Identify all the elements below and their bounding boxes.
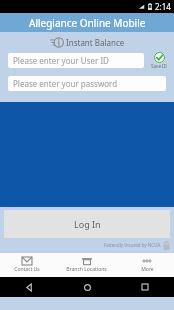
staticText: More	[141, 266, 154, 273]
button[interactable]: Please enter your User ID	[8, 53, 144, 68]
button[interactable]: Contact Us	[0, 253, 53, 277]
staticText: Branch Locations	[66, 266, 107, 273]
button[interactable]: Branch Locations	[53, 253, 120, 277]
staticText: Log In	[74, 218, 101, 230]
staticText: 2:14	[155, 1, 171, 12]
button[interactable]: Instant Balance	[0, 32, 174, 52]
staticText: Save ID	[151, 63, 167, 69]
button[interactable]: Log In	[4, 210, 170, 238]
staticText: Federally Insured by NCUA	[104, 242, 161, 248]
button[interactable]: Back	[0, 277, 58, 297]
button[interactable]: Save ID	[148, 52, 170, 69]
button[interactable]: Recent apps	[116, 277, 174, 297]
button[interactable]: Please enter your password	[8, 76, 166, 91]
staticText: Please enter your password	[13, 78, 118, 89]
button[interactable]: More	[120, 253, 174, 277]
staticText: Instant Balance	[66, 37, 125, 48]
staticText: Contact Us	[14, 266, 40, 273]
button[interactable]: Home	[58, 277, 116, 297]
staticText: Please enter your User ID	[13, 55, 109, 66]
staticText: Allegiance Online Mobile	[29, 16, 146, 30]
